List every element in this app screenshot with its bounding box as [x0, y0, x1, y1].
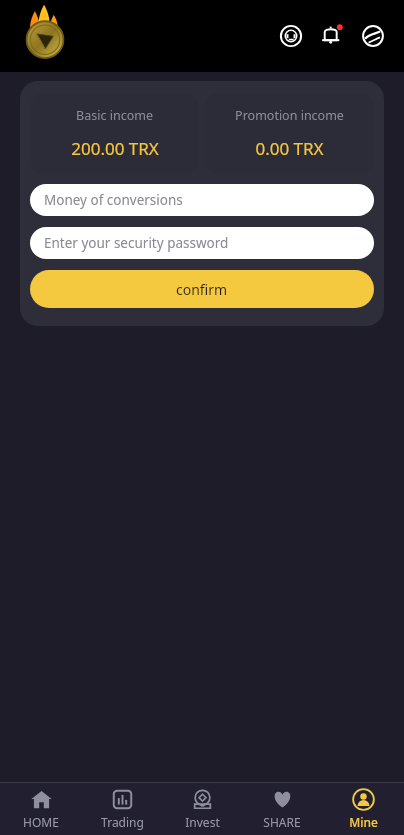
button[interactable]: Language [356, 19, 390, 53]
staticText: Enter your security password [44, 234, 229, 252]
button[interactable]: Trading [83, 784, 161, 834]
button[interactable]: Invest [163, 784, 241, 834]
button[interactable]: Notifications [315, 19, 349, 53]
button[interactable]: confirm [30, 270, 374, 308]
button[interactable]: Promotion income [205, 93, 374, 174]
staticText: Invest [185, 814, 220, 830]
button[interactable]: Mine [324, 784, 402, 834]
staticText: HOME [23, 814, 59, 830]
button[interactable]: SHARE [243, 784, 321, 834]
staticText: 0.00 TRX [255, 137, 324, 160]
button[interactable]: Enter your security password [30, 227, 374, 259]
button[interactable]: Basic income [30, 93, 199, 174]
staticText: Basic income [76, 107, 153, 124]
staticText: Mine [349, 814, 378, 830]
staticText: Promotion income [235, 107, 344, 124]
staticText: SHARE [263, 814, 301, 830]
staticText: Money of conversions [44, 191, 183, 209]
button[interactable]: Logo [22, 13, 68, 59]
button[interactable]: HOME [2, 784, 80, 834]
staticText: confirm [176, 280, 228, 299]
staticText: Trading [101, 814, 144, 830]
button[interactable]: Customer service [274, 19, 308, 53]
button[interactable]: Money of conversions [30, 184, 374, 216]
staticText: 200.00 TRX [71, 137, 159, 160]
